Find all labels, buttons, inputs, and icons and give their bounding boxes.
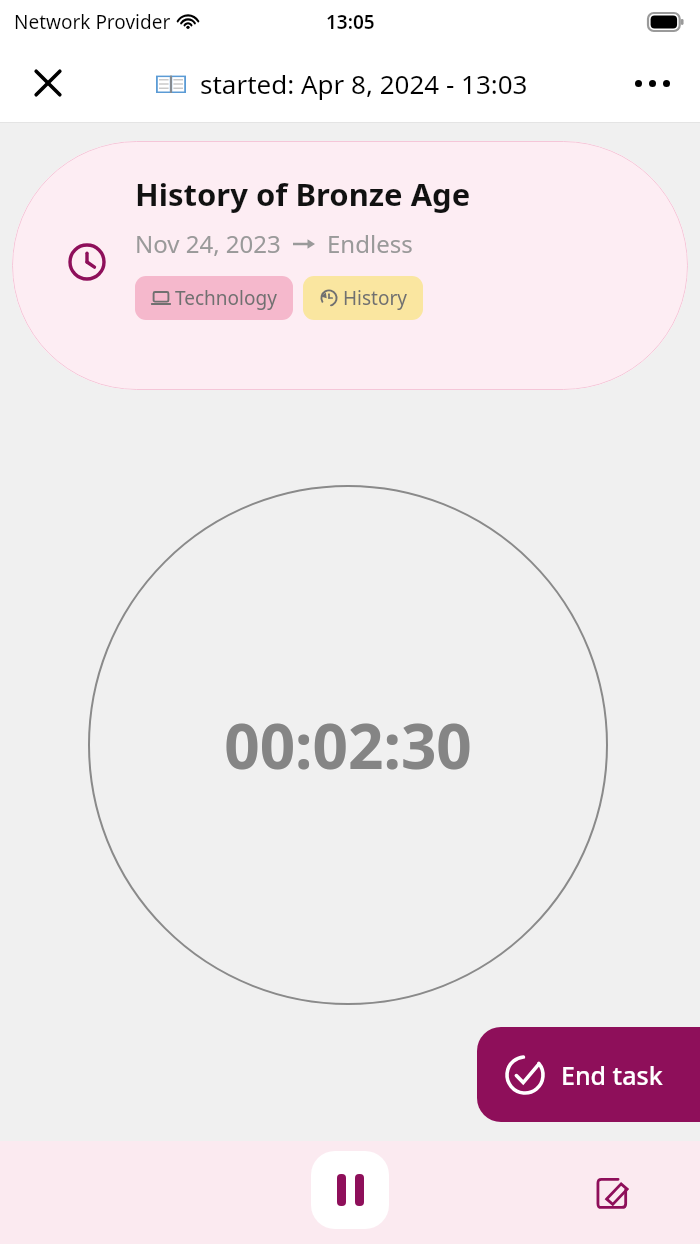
staticText: Network Provider [14, 9, 171, 35]
button[interactable]: More options [624, 55, 680, 111]
button[interactable]: History of Bronze Age [12, 141, 688, 390]
staticText: Nov 24, 2023 [135, 227, 281, 260]
button[interactable]: End task [477, 1027, 700, 1122]
staticText: Technology [175, 285, 277, 311]
button[interactable]: Edit [584, 1165, 640, 1221]
staticText: History [343, 285, 407, 311]
staticText: End task [561, 1058, 663, 1092]
button[interactable]: History [303, 276, 423, 320]
button[interactable]: Technology [135, 276, 293, 320]
staticText: Endless [327, 227, 413, 260]
staticText: 13:05 [326, 9, 375, 35]
staticText: History of Bronze Age [135, 173, 471, 215]
staticText: started: Apr 8, 2024 - 13:03 [200, 66, 528, 101]
button[interactable]: Close [18, 53, 78, 113]
button[interactable]: Pause [311, 1151, 389, 1229]
staticText: 00:02:30 [224, 703, 472, 787]
